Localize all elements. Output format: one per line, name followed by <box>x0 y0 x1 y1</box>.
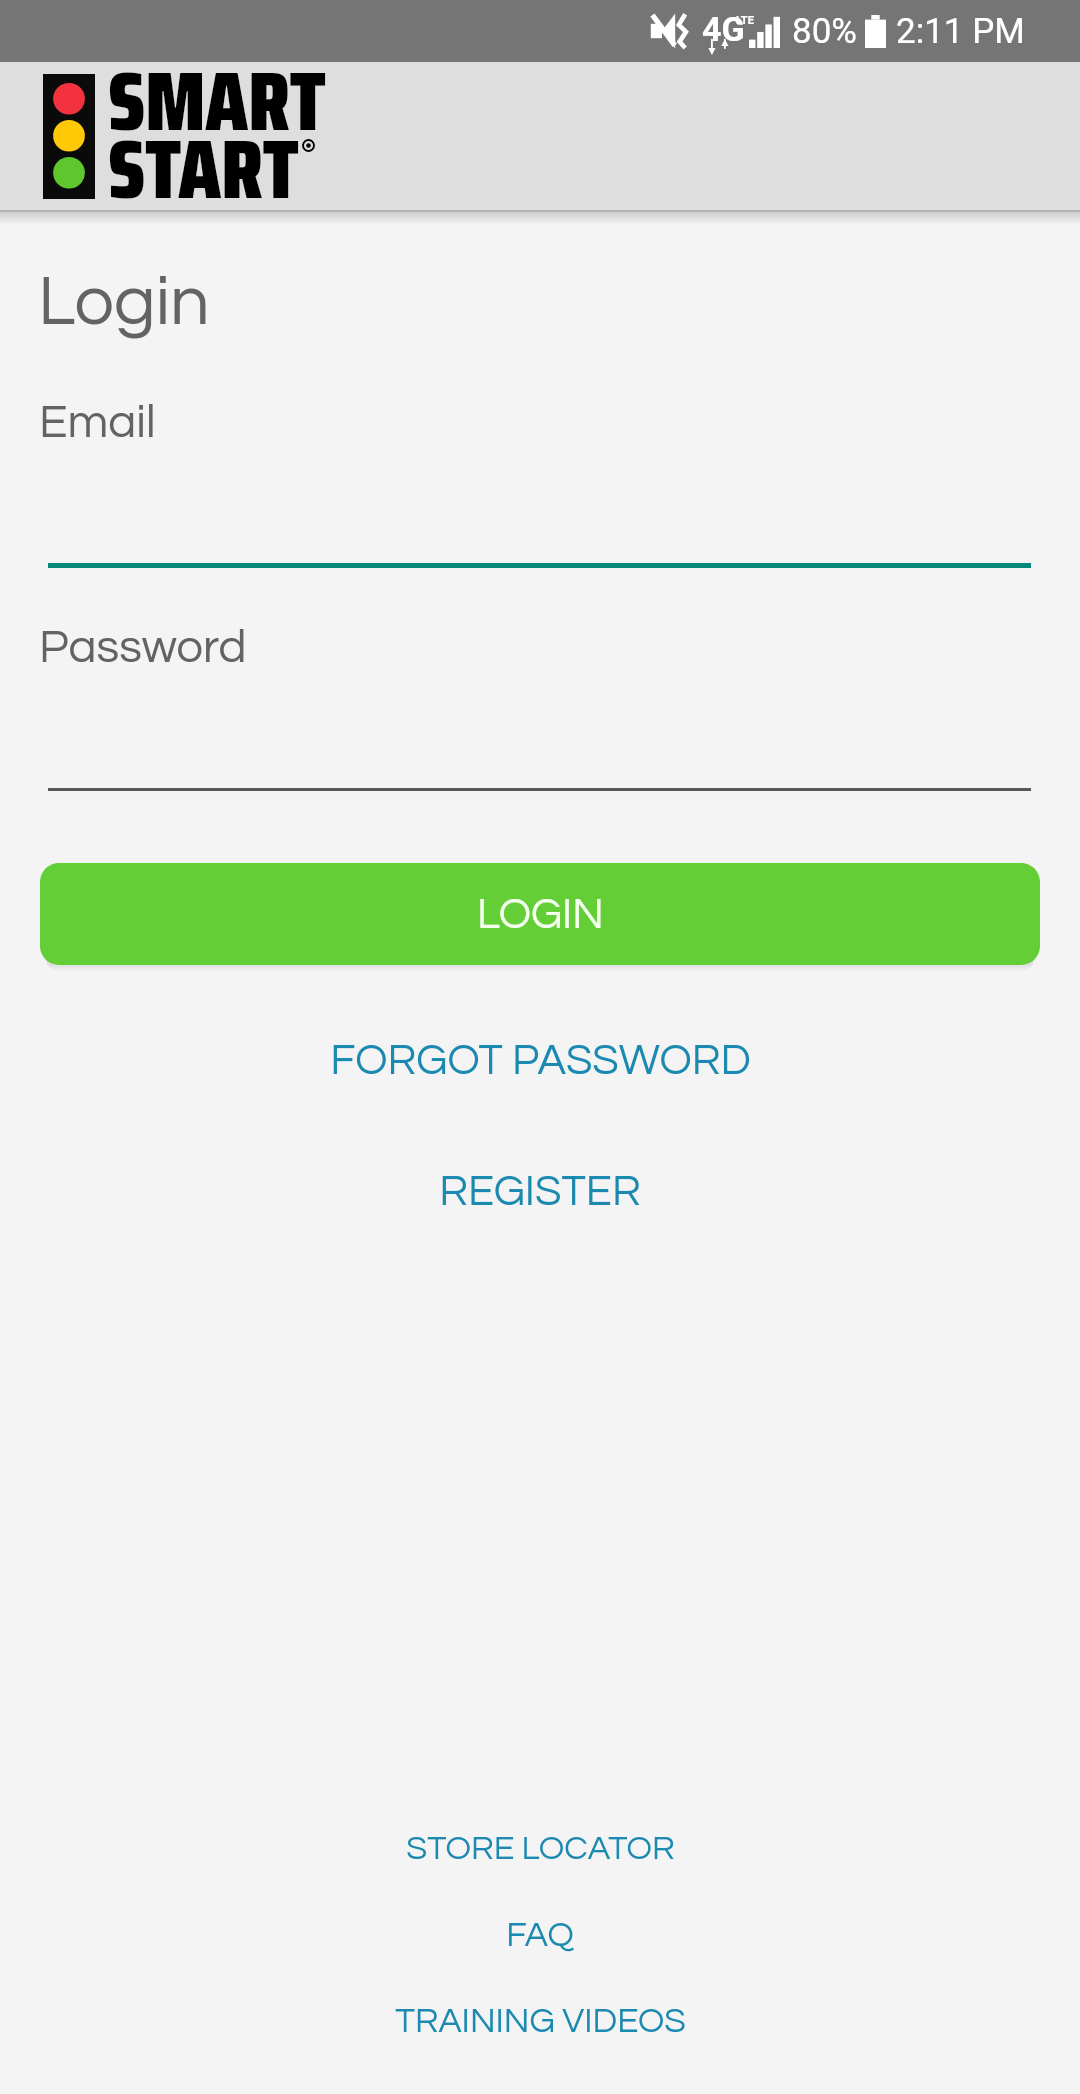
staticText: START <box>108 104 299 235</box>
staticText: FAQ <box>506 1917 574 1953</box>
other: Smart Start logo <box>43 74 95 199</box>
staticText: FORGOT PASSWORD <box>330 1039 751 1083</box>
staticText: 80% <box>792 11 857 52</box>
button[interactable]: FORGOT PASSWORD <box>0 1018 1080 1104</box>
button[interactable]: TRAINING VIDEOS <box>0 1978 1080 2064</box>
staticText: LOGIN <box>477 893 604 937</box>
staticText: TRAINING VIDEOS <box>395 2003 686 2039</box>
button[interactable]: FAQ <box>0 1892 1080 1978</box>
staticText: 2:11 PM <box>896 11 1025 52</box>
staticText: Email <box>39 398 156 446</box>
other: Signal strength <box>749 17 780 48</box>
button[interactable]: REGISTER <box>0 1149 1080 1235</box>
other: Battery 80 percent <box>865 15 886 48</box>
staticText: Password <box>39 623 247 671</box>
staticText: 4G <box>702 9 745 49</box>
staticText: LTE <box>736 14 754 27</box>
staticText: STORE LOCATOR <box>406 1831 675 1866</box>
staticText: Login <box>38 267 210 339</box>
button[interactable]: LOGIN <box>40 863 1040 965</box>
staticText: REGISTER <box>439 1170 641 1214</box>
button[interactable]: STORE LOCATOR <box>0 1805 1080 1891</box>
other: Sound muted <box>650 12 690 50</box>
staticText: SMART <box>108 36 326 167</box>
